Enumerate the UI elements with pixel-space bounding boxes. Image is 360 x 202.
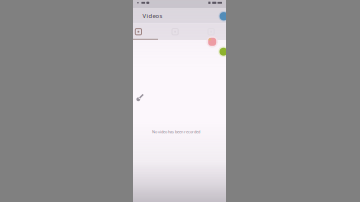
button[interactable]: Recordings	[133, 23, 164, 40]
button[interactable]: Stop recording	[206, 36, 218, 48]
button[interactable]: Settings	[195, 23, 226, 40]
button[interactable]: Record	[218, 46, 229, 57]
staticText: Videos	[142, 12, 162, 20]
button[interactable]: Floating menu	[218, 11, 229, 21]
staticText: No video has been recorded	[152, 129, 200, 134]
